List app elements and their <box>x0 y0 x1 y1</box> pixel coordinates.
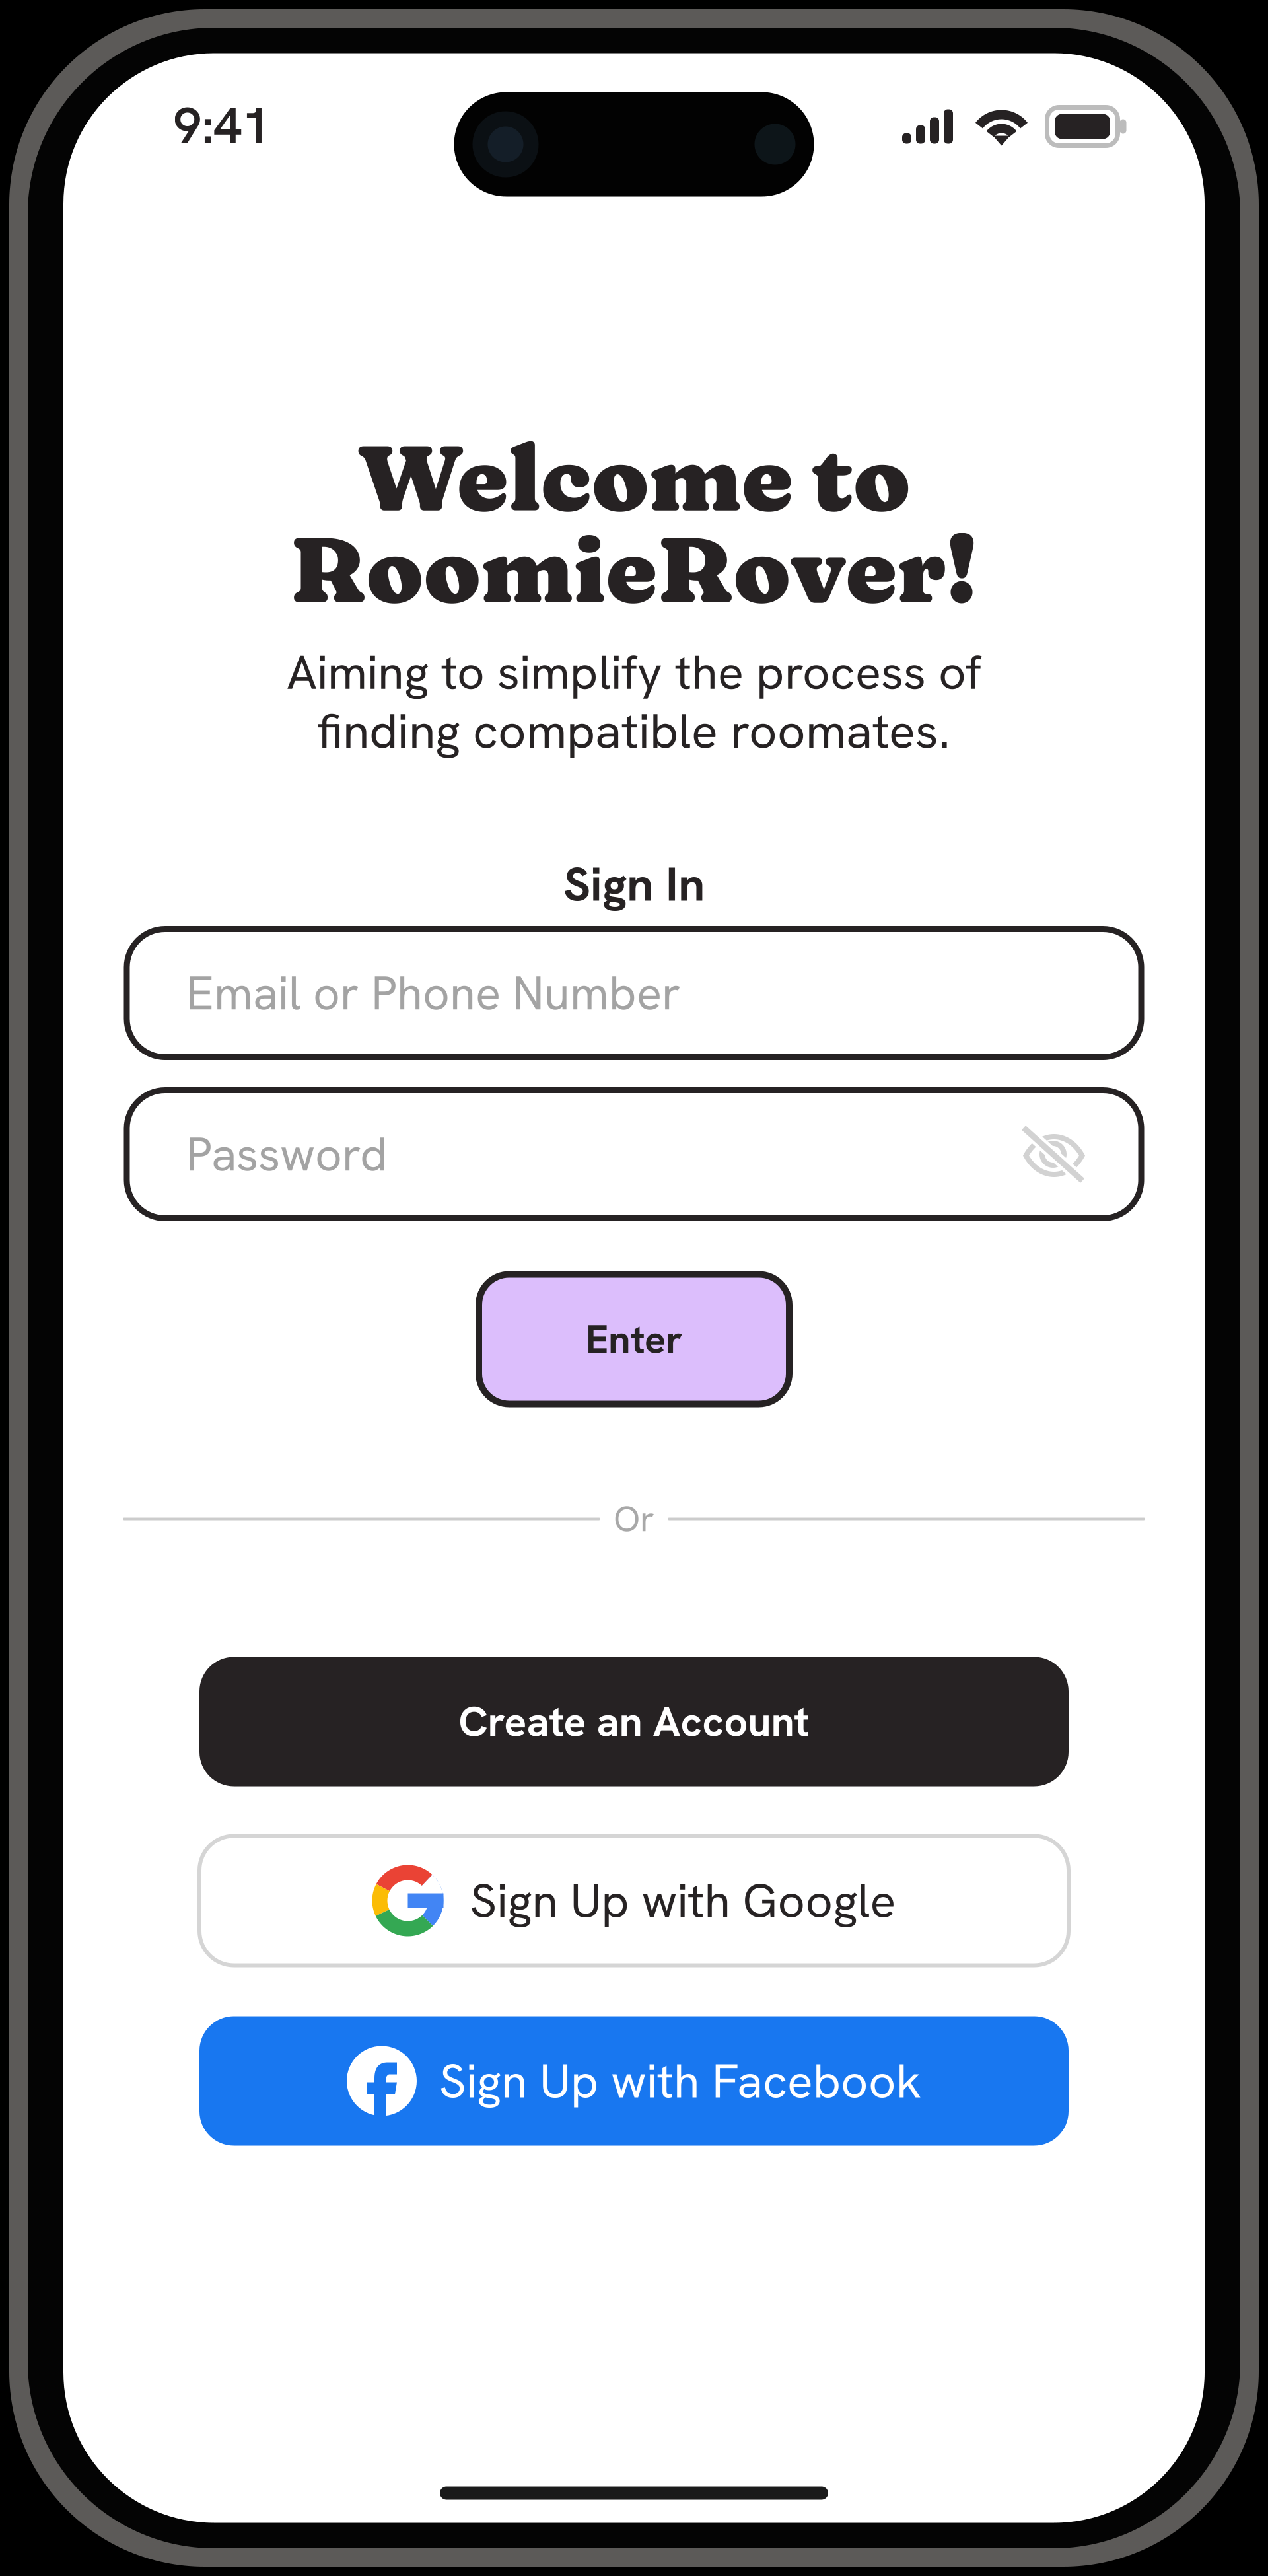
button[interactable]: Sign Up with Facebook <box>199 2016 1069 2146</box>
staticText: Password <box>186 1124 388 1185</box>
button[interactable]: Email or Phone Number <box>127 929 1141 1057</box>
staticText: Or <box>614 1496 654 1542</box>
button[interactable]: Sign Up with Google <box>199 1836 1069 1965</box>
staticText: RoomieRover! <box>290 512 978 626</box>
staticText: Enter <box>586 1314 682 1365</box>
staticText: 9:41 <box>173 92 270 158</box>
staticText: Aiming to simplify the process of <box>287 641 981 703</box>
staticText: Welcome to <box>357 421 911 534</box>
staticText: Email or Phone Number <box>186 962 681 1024</box>
button[interactable]: Enter <box>479 1274 789 1404</box>
staticText: finding compatible roomates. <box>318 699 950 763</box>
staticText: Sign In <box>563 853 705 915</box>
staticText: Sign Up with Facebook <box>439 2050 921 2112</box>
staticText: Sign Up with Google <box>470 1870 896 1932</box>
staticText: Create an Account <box>459 1695 809 1749</box>
button[interactable]: Password <box>127 1090 1141 1218</box>
button[interactable]: Create an Account <box>199 1657 1069 1786</box>
